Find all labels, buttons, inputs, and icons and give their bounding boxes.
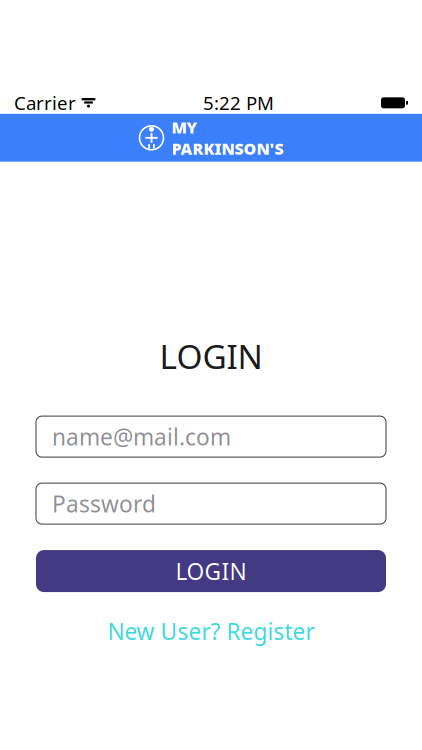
- staticText: name@mail.com: [52, 421, 231, 452]
- staticText: LOGIN: [175, 556, 246, 586]
- staticText: 5:22 PM: [203, 90, 274, 115]
- staticText: LOGIN: [159, 334, 262, 378]
- staticText: Carrier: [14, 90, 76, 115]
- button[interactable]: New User? Register: [97, 612, 324, 650]
- staticText: New User? Register: [107, 616, 314, 646]
- staticText: PARKINSON'S: [171, 138, 283, 159]
- staticText: Password: [52, 488, 156, 519]
- button[interactable]: LOGIN: [36, 550, 386, 592]
- staticText: MY: [171, 117, 197, 138]
